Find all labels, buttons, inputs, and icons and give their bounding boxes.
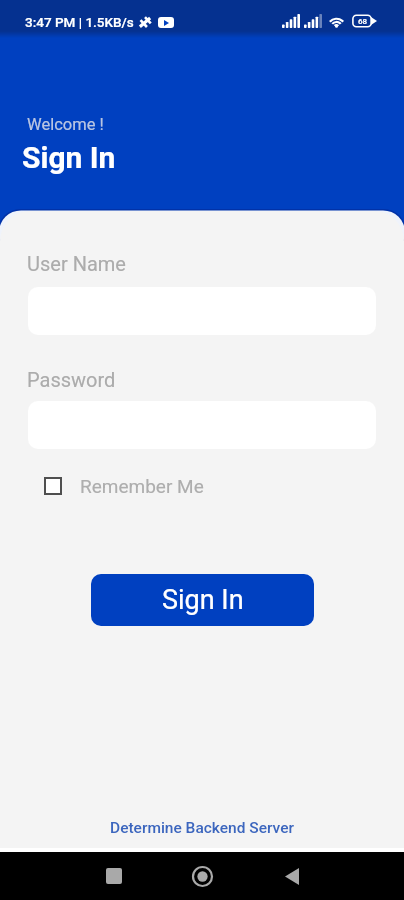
staticText: Sign In <box>22 140 116 175</box>
staticText: 3:47 PM | 1.5KB/s <box>25 14 134 30</box>
button[interactable]: Recent apps <box>94 856 134 896</box>
button[interactable]: Back <box>272 856 312 896</box>
staticText: Password <box>27 368 116 391</box>
staticText: Determine Backend Server <box>110 819 294 837</box>
staticText: 68 <box>358 17 368 26</box>
staticText: Welcome ! <box>27 115 104 134</box>
button[interactable]: Home <box>182 856 222 896</box>
staticText: Remember Me <box>80 475 204 497</box>
button[interactable]: Remember Me <box>38 469 210 503</box>
staticText: User Name <box>27 252 126 275</box>
button[interactable]: Sign In <box>91 574 314 626</box>
staticText: Sign In <box>162 584 244 616</box>
button[interactable]: Determine Backend Server <box>100 816 304 840</box>
